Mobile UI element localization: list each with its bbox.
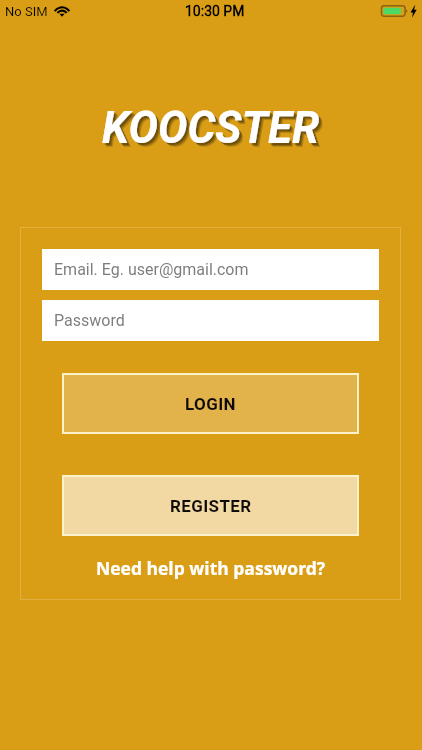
staticText: Password xyxy=(54,311,125,330)
button[interactable]: Need help with password? xyxy=(82,554,340,582)
other: Wi-Fi signal xyxy=(54,5,71,18)
staticText: KOOCSTER xyxy=(104,104,322,156)
other: Battery charging xyxy=(381,0,417,22)
staticText: KOOCSTER xyxy=(106,106,324,158)
staticText: Need help with password? xyxy=(96,556,326,580)
staticText: KOOCSTER xyxy=(105,105,323,157)
staticText: No SIM xyxy=(5,4,48,19)
staticText: LOGIN xyxy=(185,394,236,414)
button[interactable]: REGISTER xyxy=(62,475,359,536)
button[interactable]: Email. Eg. user@gmail.com xyxy=(42,249,379,290)
staticText: 10:30 PM xyxy=(185,3,245,19)
staticText: REGISTER xyxy=(170,496,252,516)
button[interactable]: Password xyxy=(42,300,379,341)
button[interactable]: LOGIN xyxy=(62,373,359,434)
staticText: Email. Eg. user@gmail.com xyxy=(54,260,249,279)
staticText: KOOCSTER xyxy=(102,102,320,154)
